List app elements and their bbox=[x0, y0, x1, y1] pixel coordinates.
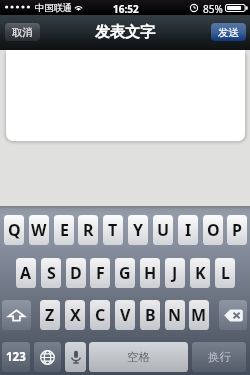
staticText: C bbox=[95, 304, 106, 326]
staticText: T bbox=[108, 219, 118, 241]
staticText: H bbox=[144, 262, 157, 284]
button[interactable]: Y bbox=[128, 215, 148, 245]
button[interactable]: Voice input bbox=[65, 342, 86, 372]
button[interactable]: U bbox=[153, 215, 173, 245]
button[interactable]: I bbox=[178, 215, 198, 245]
button[interactable]: N bbox=[165, 300, 185, 330]
staticText: Z bbox=[45, 304, 55, 326]
button[interactable]: R bbox=[78, 215, 98, 245]
button[interactable]: E bbox=[54, 215, 74, 245]
button[interactable]: B bbox=[140, 300, 160, 330]
button[interactable]: A bbox=[16, 258, 36, 288]
staticText: K bbox=[195, 262, 206, 284]
staticText: S bbox=[47, 262, 56, 284]
staticText: A bbox=[20, 262, 32, 284]
staticText: 123 bbox=[6, 349, 26, 365]
button[interactable]: Z bbox=[40, 300, 60, 330]
button[interactable]: V bbox=[115, 300, 135, 330]
button[interactable]: 换行 bbox=[192, 342, 246, 372]
button[interactable]: 123 bbox=[2, 342, 30, 372]
button[interactable]: F bbox=[90, 258, 110, 288]
button[interactable]: Q bbox=[4, 215, 24, 245]
staticText: B bbox=[145, 304, 156, 326]
staticText: P bbox=[232, 219, 242, 241]
staticText: F bbox=[96, 262, 105, 284]
button[interactable]: P bbox=[227, 215, 247, 245]
button[interactable]: J bbox=[165, 258, 185, 288]
staticText: R bbox=[83, 219, 94, 241]
staticText: M bbox=[191, 304, 207, 326]
button[interactable]: 发送 bbox=[211, 23, 246, 41]
button[interactable]: H bbox=[140, 258, 160, 288]
button[interactable]: Backspace bbox=[219, 300, 247, 330]
button[interactable]: 空格 bbox=[89, 342, 188, 372]
staticText: 中国联通 bbox=[35, 2, 72, 14]
staticText: 85% bbox=[203, 2, 223, 16]
button[interactable]: X bbox=[65, 300, 85, 330]
button[interactable]: L bbox=[215, 258, 235, 288]
button[interactable]: M bbox=[189, 300, 209, 330]
button[interactable]: S bbox=[41, 258, 61, 288]
staticText: 换行 bbox=[208, 350, 231, 364]
button[interactable]: W bbox=[29, 215, 49, 245]
button[interactable]: Switch keyboard bbox=[34, 342, 61, 372]
button[interactable]: G bbox=[115, 258, 135, 288]
staticText: W bbox=[31, 219, 47, 241]
staticText: U bbox=[157, 219, 170, 241]
staticText: I bbox=[185, 219, 192, 241]
staticText: V bbox=[120, 304, 131, 326]
staticText: Q bbox=[8, 219, 21, 241]
staticText: 16:52 bbox=[113, 2, 139, 16]
staticText: E bbox=[60, 219, 69, 241]
staticText: O bbox=[207, 219, 220, 241]
staticText: G bbox=[119, 262, 131, 284]
button[interactable]: K bbox=[190, 258, 210, 288]
staticText: J bbox=[172, 262, 178, 284]
staticText: N bbox=[168, 304, 182, 326]
staticText: 空格 bbox=[127, 350, 150, 364]
staticText: Y bbox=[133, 219, 144, 241]
staticText: X bbox=[70, 304, 81, 326]
staticText: 取消 bbox=[12, 26, 33, 39]
staticText: 发送 bbox=[218, 26, 239, 39]
button[interactable]: C bbox=[90, 300, 110, 330]
button[interactable]: T bbox=[103, 215, 123, 245]
button[interactable]: D bbox=[66, 258, 86, 288]
button[interactable]: 取消 bbox=[5, 23, 40, 41]
staticText: L bbox=[221, 262, 230, 284]
staticText: D bbox=[70, 262, 82, 284]
staticText: 发表文字 bbox=[95, 23, 155, 42]
button[interactable]: O bbox=[203, 215, 223, 245]
button[interactable]: Shift bbox=[2, 300, 31, 330]
